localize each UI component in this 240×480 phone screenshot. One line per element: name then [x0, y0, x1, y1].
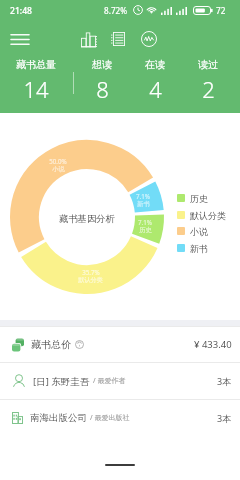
button[interactable]: [日] 东野圭吾: [0, 363, 240, 399]
staticText: 3本: [217, 375, 232, 387]
staticText: 14: [23, 74, 49, 104]
staticText: 35.7%: [82, 268, 100, 276]
staticText: 2: [202, 74, 215, 104]
staticText: 7.1%: [138, 218, 152, 226]
staticText: 8: [96, 74, 109, 104]
button[interactable]: 藏书总量: [8, 58, 64, 104]
staticText: 72: [216, 5, 226, 16]
staticText: 默认分类: [190, 210, 226, 221]
button[interactable]: 读过: [180, 58, 236, 104]
staticText: 8.72%: [104, 5, 128, 16]
button[interactable]: Statistics: [76, 26, 102, 52]
staticText: 在读: [145, 58, 165, 71]
staticText: 藏书总量: [16, 58, 56, 71]
staticText: 想读: [92, 58, 112, 71]
staticText: 藏书总价: [31, 338, 71, 351]
staticText: 历史: [190, 193, 208, 204]
button[interactable]: Book list: [105, 26, 131, 52]
staticText: 读过: [198, 58, 218, 71]
button[interactable]: 在读: [127, 58, 183, 104]
staticText: ¥ 433.40: [194, 338, 232, 351]
staticText: 藏书基因分析: [59, 213, 115, 225]
staticText: 默认分类: [78, 276, 103, 284]
staticText: 新书: [190, 243, 208, 254]
staticText: 历史: [139, 226, 152, 234]
staticText: 7.1%: [136, 192, 150, 200]
staticText: 南海出版公司: [30, 412, 87, 424]
staticText: 3本: [217, 412, 232, 424]
button[interactable]: Menu: [7, 26, 33, 52]
staticText: [日] 东野圭吾: [33, 375, 90, 388]
button[interactable]: 藏书总价: [0, 327, 240, 362]
staticText: / 最爱出版社: [90, 413, 130, 423]
staticText: 小说: [52, 165, 65, 173]
staticText: / 最爱作者: [93, 376, 126, 386]
staticText: 新书: [137, 200, 150, 208]
staticText: 4: [149, 74, 162, 104]
button[interactable]: Activity: [136, 26, 162, 52]
staticText: 小说: [190, 226, 208, 237]
staticText: 21:48: [10, 5, 33, 17]
button[interactable]: 南海出版公司: [0, 400, 240, 436]
staticText: 50.0%: [49, 157, 67, 165]
button[interactable]: 想读: [74, 58, 130, 104]
